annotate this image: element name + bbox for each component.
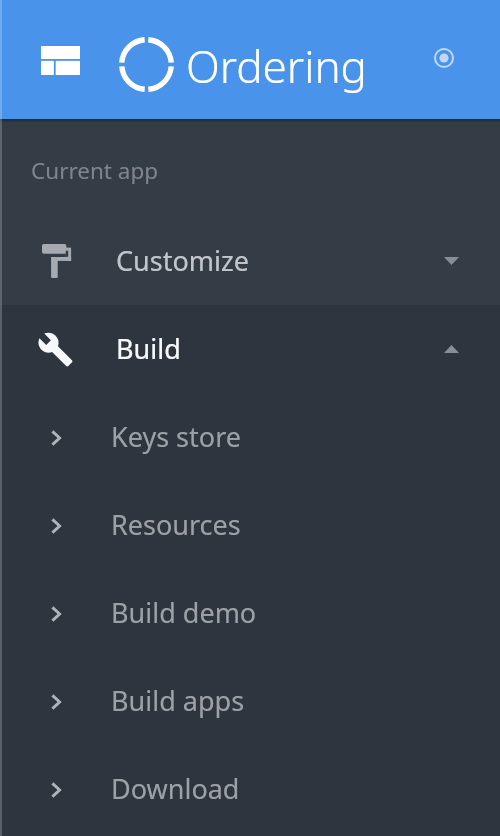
staticText: Customize bbox=[116, 242, 249, 279]
staticText: Resources bbox=[111, 506, 241, 543]
button[interactable]: Build bbox=[0, 305, 500, 393]
button[interactable]: Download bbox=[0, 745, 500, 833]
button[interactable]: Record bbox=[434, 48, 454, 68]
staticText: Build demo bbox=[111, 594, 257, 631]
staticText: Build bbox=[116, 330, 181, 367]
staticText: Ordering bbox=[186, 36, 367, 96]
button[interactable]: Build apps bbox=[0, 657, 500, 745]
button[interactable]: Customize bbox=[0, 217, 500, 305]
staticText: Keys store bbox=[111, 418, 241, 455]
button[interactable]: Build demo bbox=[0, 569, 500, 657]
staticText: Download bbox=[111, 770, 240, 807]
button[interactable]: Keys store bbox=[0, 393, 500, 481]
staticText: Build apps bbox=[111, 682, 245, 719]
button[interactable]: Resources bbox=[0, 481, 500, 569]
staticText: Current app bbox=[31, 155, 159, 186]
button[interactable]: Dashboard bbox=[41, 46, 80, 75]
